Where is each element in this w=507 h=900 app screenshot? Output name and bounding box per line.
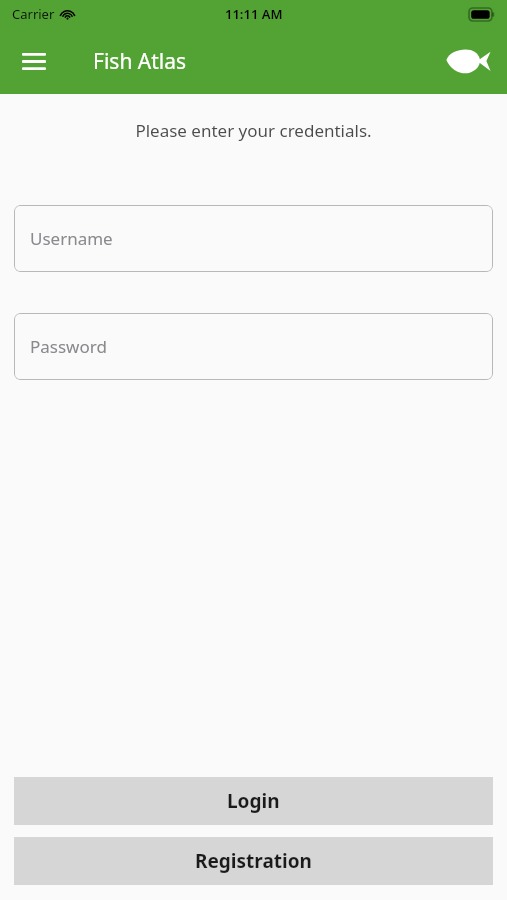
button[interactable]: Username	[14, 205, 493, 272]
staticText: Login	[227, 788, 280, 814]
staticText: Fish Atlas	[93, 47, 187, 76]
button[interactable]: Registration	[14, 837, 493, 885]
button[interactable]: Open navigation menu	[14, 41, 54, 81]
button[interactable]: Password	[14, 313, 493, 380]
staticText: Please enter your credentials.	[0, 119, 507, 142]
staticText: Username	[30, 227, 113, 250]
staticText: 11:11 AM	[225, 5, 283, 23]
staticText: Carrier	[12, 5, 55, 23]
staticText: Registration	[195, 848, 312, 874]
staticText: Password	[30, 335, 107, 358]
button[interactable]: Login	[14, 777, 493, 825]
button[interactable]: Fish	[441, 39, 495, 83]
